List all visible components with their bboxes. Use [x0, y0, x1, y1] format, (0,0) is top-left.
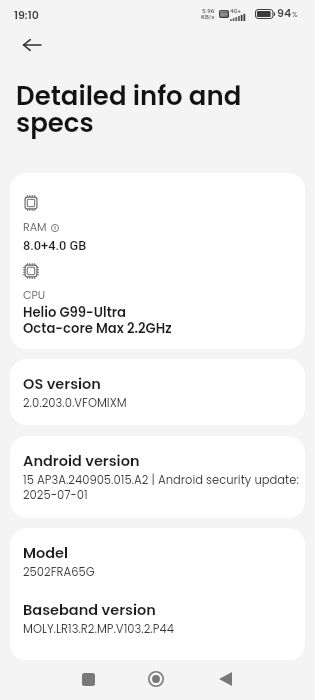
staticText: MOLY.LR13.R2.MP.V103.2.P44: [23, 622, 174, 637]
staticText: Baseband version: [23, 603, 156, 620]
staticText: 19:10: [14, 7, 39, 22]
staticText: %: [292, 11, 298, 19]
staticText: 8.0+4.0 GB: [23, 237, 87, 253]
staticText: KB/s: [201, 14, 215, 20]
staticText: 4G+: [230, 7, 241, 14]
staticText: OS version: [23, 377, 101, 394]
staticText: Helio G99-Ultra: [23, 305, 127, 321]
staticText: RAM: [23, 221, 47, 234]
button[interactable]: Home: [134, 667, 178, 691]
staticText: CPU: [23, 289, 46, 302]
button[interactable]: OS version: [10, 359, 305, 425]
staticText: 15 AP3A.240905.015.A2 | Android security…: [23, 473, 301, 503]
button[interactable]: Recent apps: [66, 667, 110, 691]
staticText: Octa-core Max 2.2GHz: [23, 321, 172, 337]
button[interactable]: Back: [11, 28, 53, 62]
staticText: 2502FRA65G: [23, 565, 95, 580]
staticText: 2.0.203.0.VFOMIXM: [23, 396, 127, 411]
staticText: Android version: [23, 454, 140, 471]
button[interactable]: Android version: [10, 436, 305, 518]
button[interactable]: Model: [10, 528, 305, 661]
staticText: Detailed info and specs: [16, 85, 257, 139]
button[interactable]: RAM: [10, 173, 305, 349]
staticText: Model: [23, 546, 69, 563]
staticText: 94: [277, 8, 292, 20]
staticText: 5.96: [202, 8, 215, 14]
button[interactable]: Back: [203, 667, 247, 691]
